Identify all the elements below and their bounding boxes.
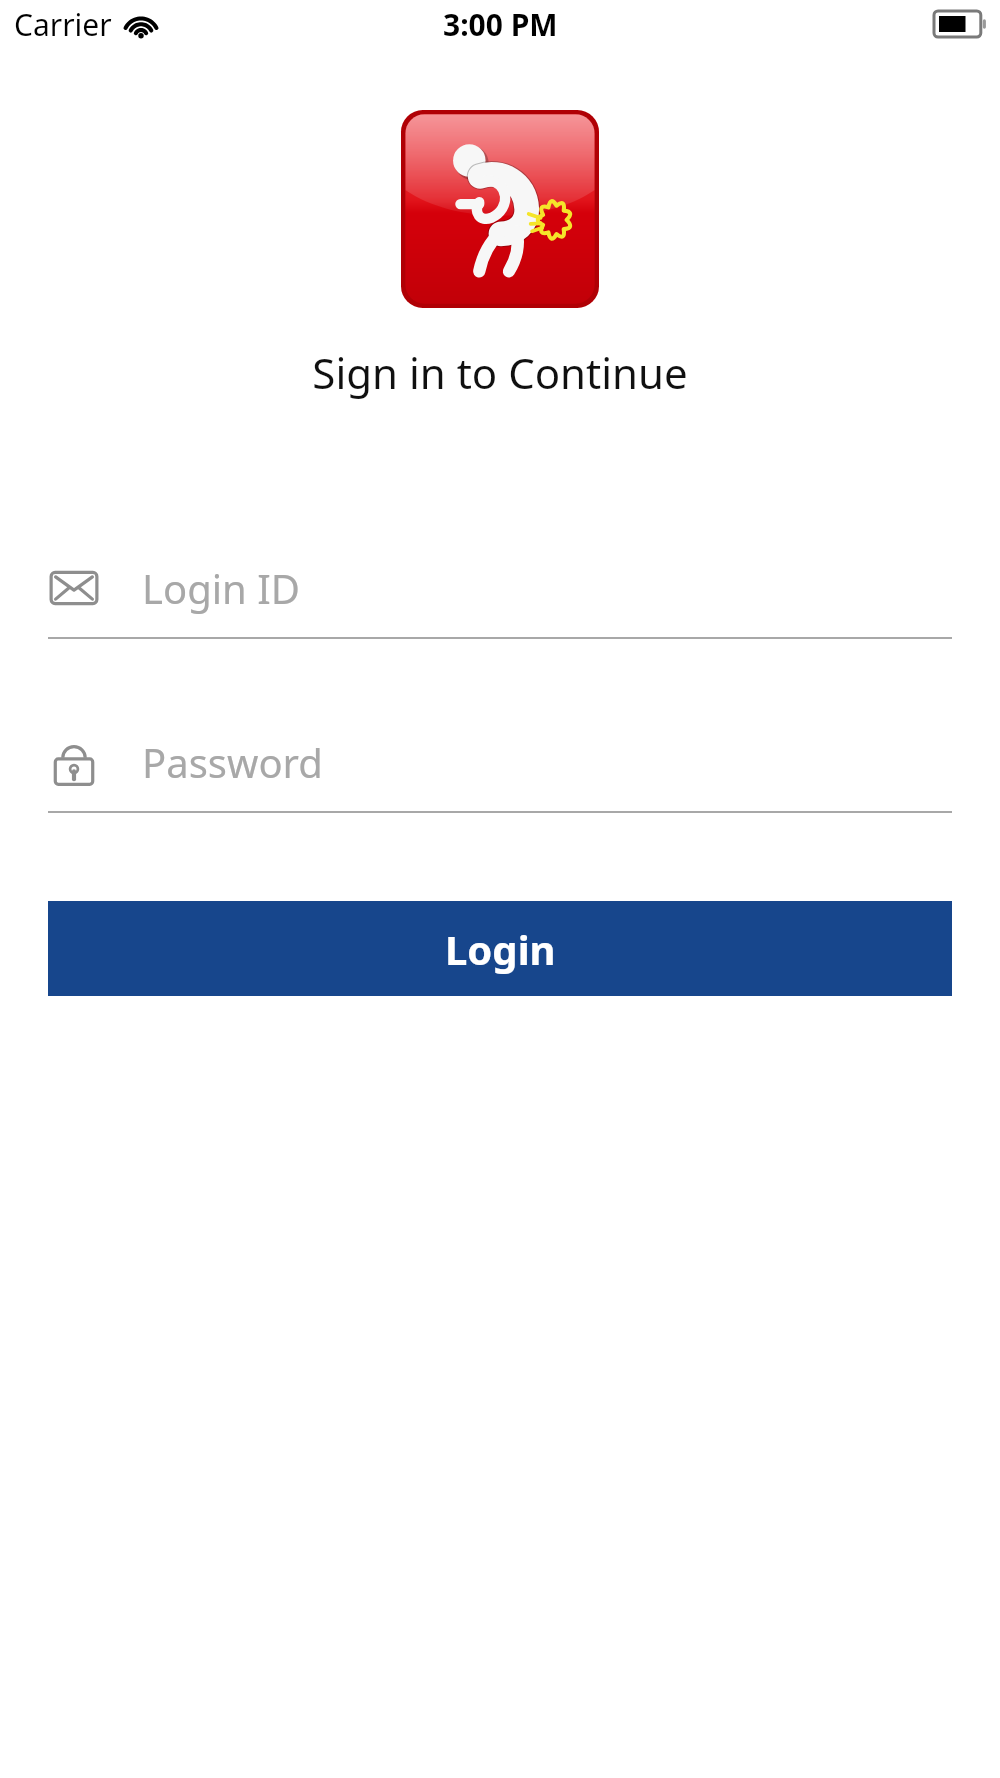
button[interactable]: Email [48,561,952,639]
button[interactable]: Password [48,735,952,813]
staticText: Password [142,735,323,789]
other: Password [48,736,100,788]
staticText: Login [445,922,556,976]
staticText: 3:00 PM [443,4,558,45]
staticText: Sign in to Continue [0,344,1000,401]
staticText: Carrier [14,4,112,45]
staticText: Login ID [142,561,300,615]
button[interactable]: Login [48,901,952,996]
other: Email [48,562,100,614]
